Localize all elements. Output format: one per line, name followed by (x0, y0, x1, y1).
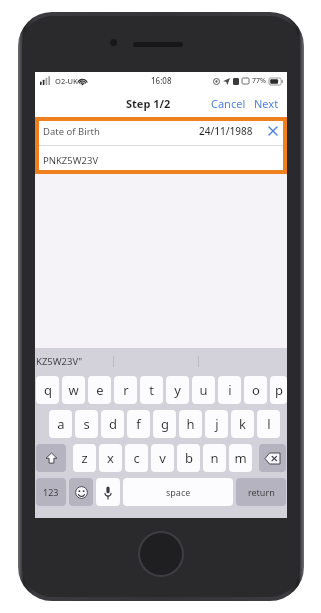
button[interactable]: c (125, 444, 148, 472)
staticText: r (123, 381, 129, 399)
button[interactable]: f (127, 410, 150, 438)
staticText: x (107, 449, 114, 467)
staticText: a (57, 415, 65, 433)
button[interactable]: s (75, 410, 98, 438)
staticText: 24/11/1988 (199, 124, 253, 138)
button[interactable]: w (62, 376, 85, 404)
button[interactable]: r (114, 376, 137, 404)
button[interactable]: u (192, 376, 215, 404)
button[interactable]: 123 (36, 478, 66, 506)
staticText: Step 1/2 (126, 96, 171, 111)
staticText: v (159, 449, 166, 467)
button[interactable]: y (166, 376, 189, 404)
button[interactable]: n (203, 444, 226, 472)
staticText: t (149, 381, 154, 399)
staticText: l (267, 415, 271, 433)
staticText: u (199, 381, 208, 399)
staticText: space (166, 486, 191, 498)
staticText: z (81, 449, 88, 467)
staticText: Date of Birth (43, 125, 100, 138)
button[interactable]: Date of Birth (35, 117, 287, 145)
staticText: q (44, 381, 52, 399)
button[interactable]: v (151, 444, 174, 472)
staticText: i (228, 381, 232, 399)
staticText: 123 (43, 486, 59, 498)
staticText: O2-UK (55, 76, 78, 86)
staticText: c (133, 449, 140, 467)
staticText: Cancel (211, 96, 246, 111)
button[interactable]: Emoji (69, 478, 93, 506)
staticText: b (185, 449, 193, 467)
button[interactable]: g (153, 410, 176, 438)
staticText: d (109, 415, 117, 433)
staticText: Next (254, 96, 279, 111)
button[interactable]: i (218, 376, 241, 404)
staticText: o (252, 381, 260, 399)
button[interactable]: k (231, 410, 254, 438)
staticText: e (96, 381, 104, 399)
button[interactable]: x (99, 444, 122, 472)
button[interactable]: Clear date of birth (265, 123, 281, 139)
button[interactable]: PNKZ5W23V (35, 146, 287, 174)
button[interactable]: Shift (36, 444, 66, 472)
button[interactable]: j (205, 410, 228, 438)
button[interactable]: t (140, 376, 163, 404)
staticText: s (83, 415, 90, 433)
staticText: n (210, 449, 219, 467)
button[interactable]: Next (251, 92, 282, 115)
staticText: k (239, 415, 246, 433)
button[interactable]: e (88, 376, 111, 404)
button[interactable]: d (101, 410, 124, 438)
staticText: m (234, 449, 247, 467)
button[interactable]: Backspace (259, 444, 286, 472)
button[interactable]: z (73, 444, 96, 472)
staticText: y (174, 381, 181, 399)
staticText: 77% (252, 76, 266, 86)
staticText: 16:08 (151, 75, 172, 86)
button[interactable]: l (257, 410, 280, 438)
staticText: PNKZ5W23V (43, 154, 99, 167)
button[interactable]: space (123, 478, 233, 506)
button[interactable]: a (49, 410, 72, 438)
staticText: f (136, 415, 141, 433)
button[interactable]: p (270, 376, 287, 404)
staticText: g (161, 415, 169, 433)
staticText: return (248, 486, 275, 498)
staticText: w (68, 381, 79, 399)
button[interactable]: Dictation (96, 478, 120, 506)
button[interactable]: q (36, 376, 59, 404)
staticText: h (186, 415, 195, 433)
button[interactable]: b (177, 444, 200, 472)
button[interactable]: Cancel (208, 92, 249, 115)
staticText: p (275, 381, 283, 399)
button[interactable]: return (236, 478, 286, 506)
button[interactable]: o (244, 376, 267, 404)
button[interactable]: h (179, 410, 202, 438)
staticText: j (215, 415, 219, 433)
button[interactable]: m (229, 444, 252, 472)
staticText: KZ5W23V" (36, 355, 83, 368)
